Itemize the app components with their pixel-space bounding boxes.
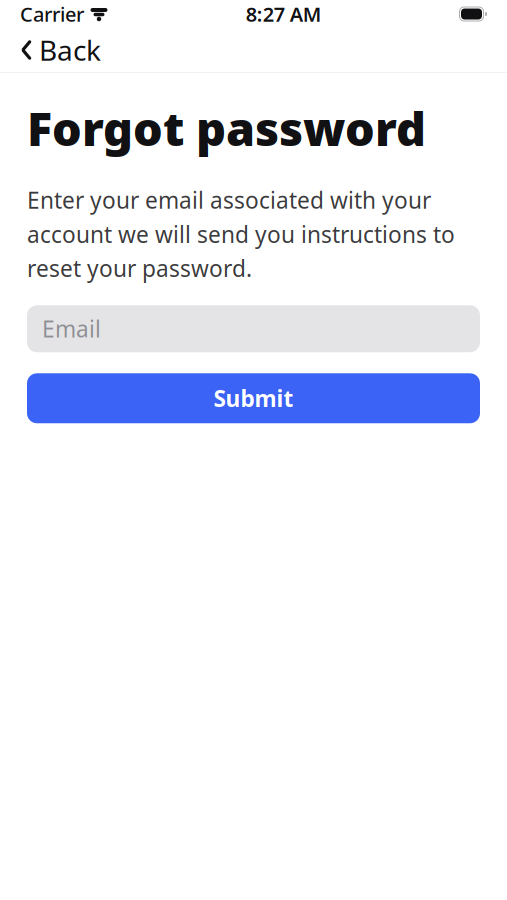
staticText: Email (42, 314, 101, 344)
staticText: Forgot password (27, 97, 426, 159)
staticText: Enter your email associated with your ac… (27, 185, 455, 283)
staticText: Carrier (20, 1, 84, 27)
staticText: Submit (213, 383, 293, 413)
staticText: Back (39, 31, 101, 69)
button[interactable]: Submit (27, 373, 480, 423)
staticText: 8:27 AM (246, 1, 322, 27)
button[interactable]: Email (27, 305, 480, 352)
button[interactable]: Back (0, 28, 121, 72)
